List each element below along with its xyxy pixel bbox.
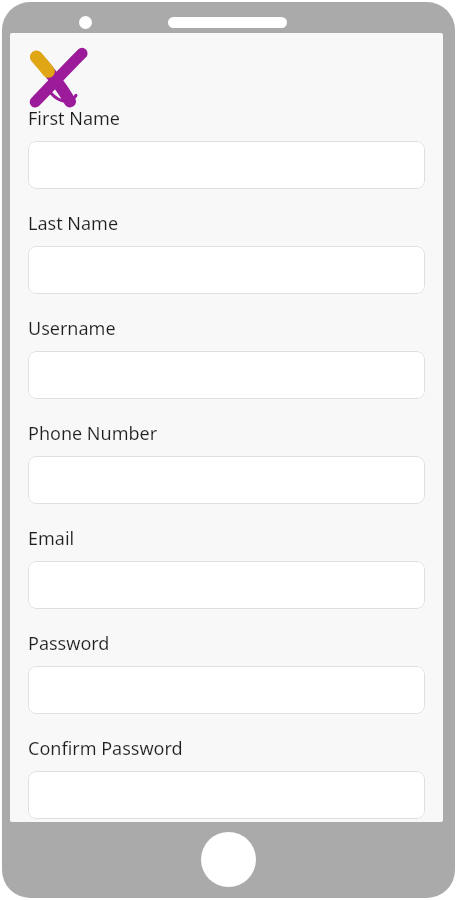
button[interactable]: Password (28, 666, 425, 714)
staticText: Username (28, 316, 116, 341)
staticText: Phone Number (28, 421, 158, 446)
button[interactable]: First Name (28, 141, 425, 189)
button[interactable]: Phone Number (28, 456, 425, 504)
staticText: Password (28, 631, 110, 656)
button[interactable]: Home (201, 832, 256, 887)
button[interactable]: Email (28, 561, 425, 609)
button[interactable]: Username (28, 351, 425, 399)
button[interactable]: Last Name (28, 246, 425, 294)
staticText: First Name (28, 106, 120, 131)
staticText: Email (28, 526, 75, 551)
staticText: Last Name (28, 211, 119, 236)
staticText: Confirm Password (28, 736, 183, 761)
button[interactable]: Confirm Password (28, 771, 425, 819)
